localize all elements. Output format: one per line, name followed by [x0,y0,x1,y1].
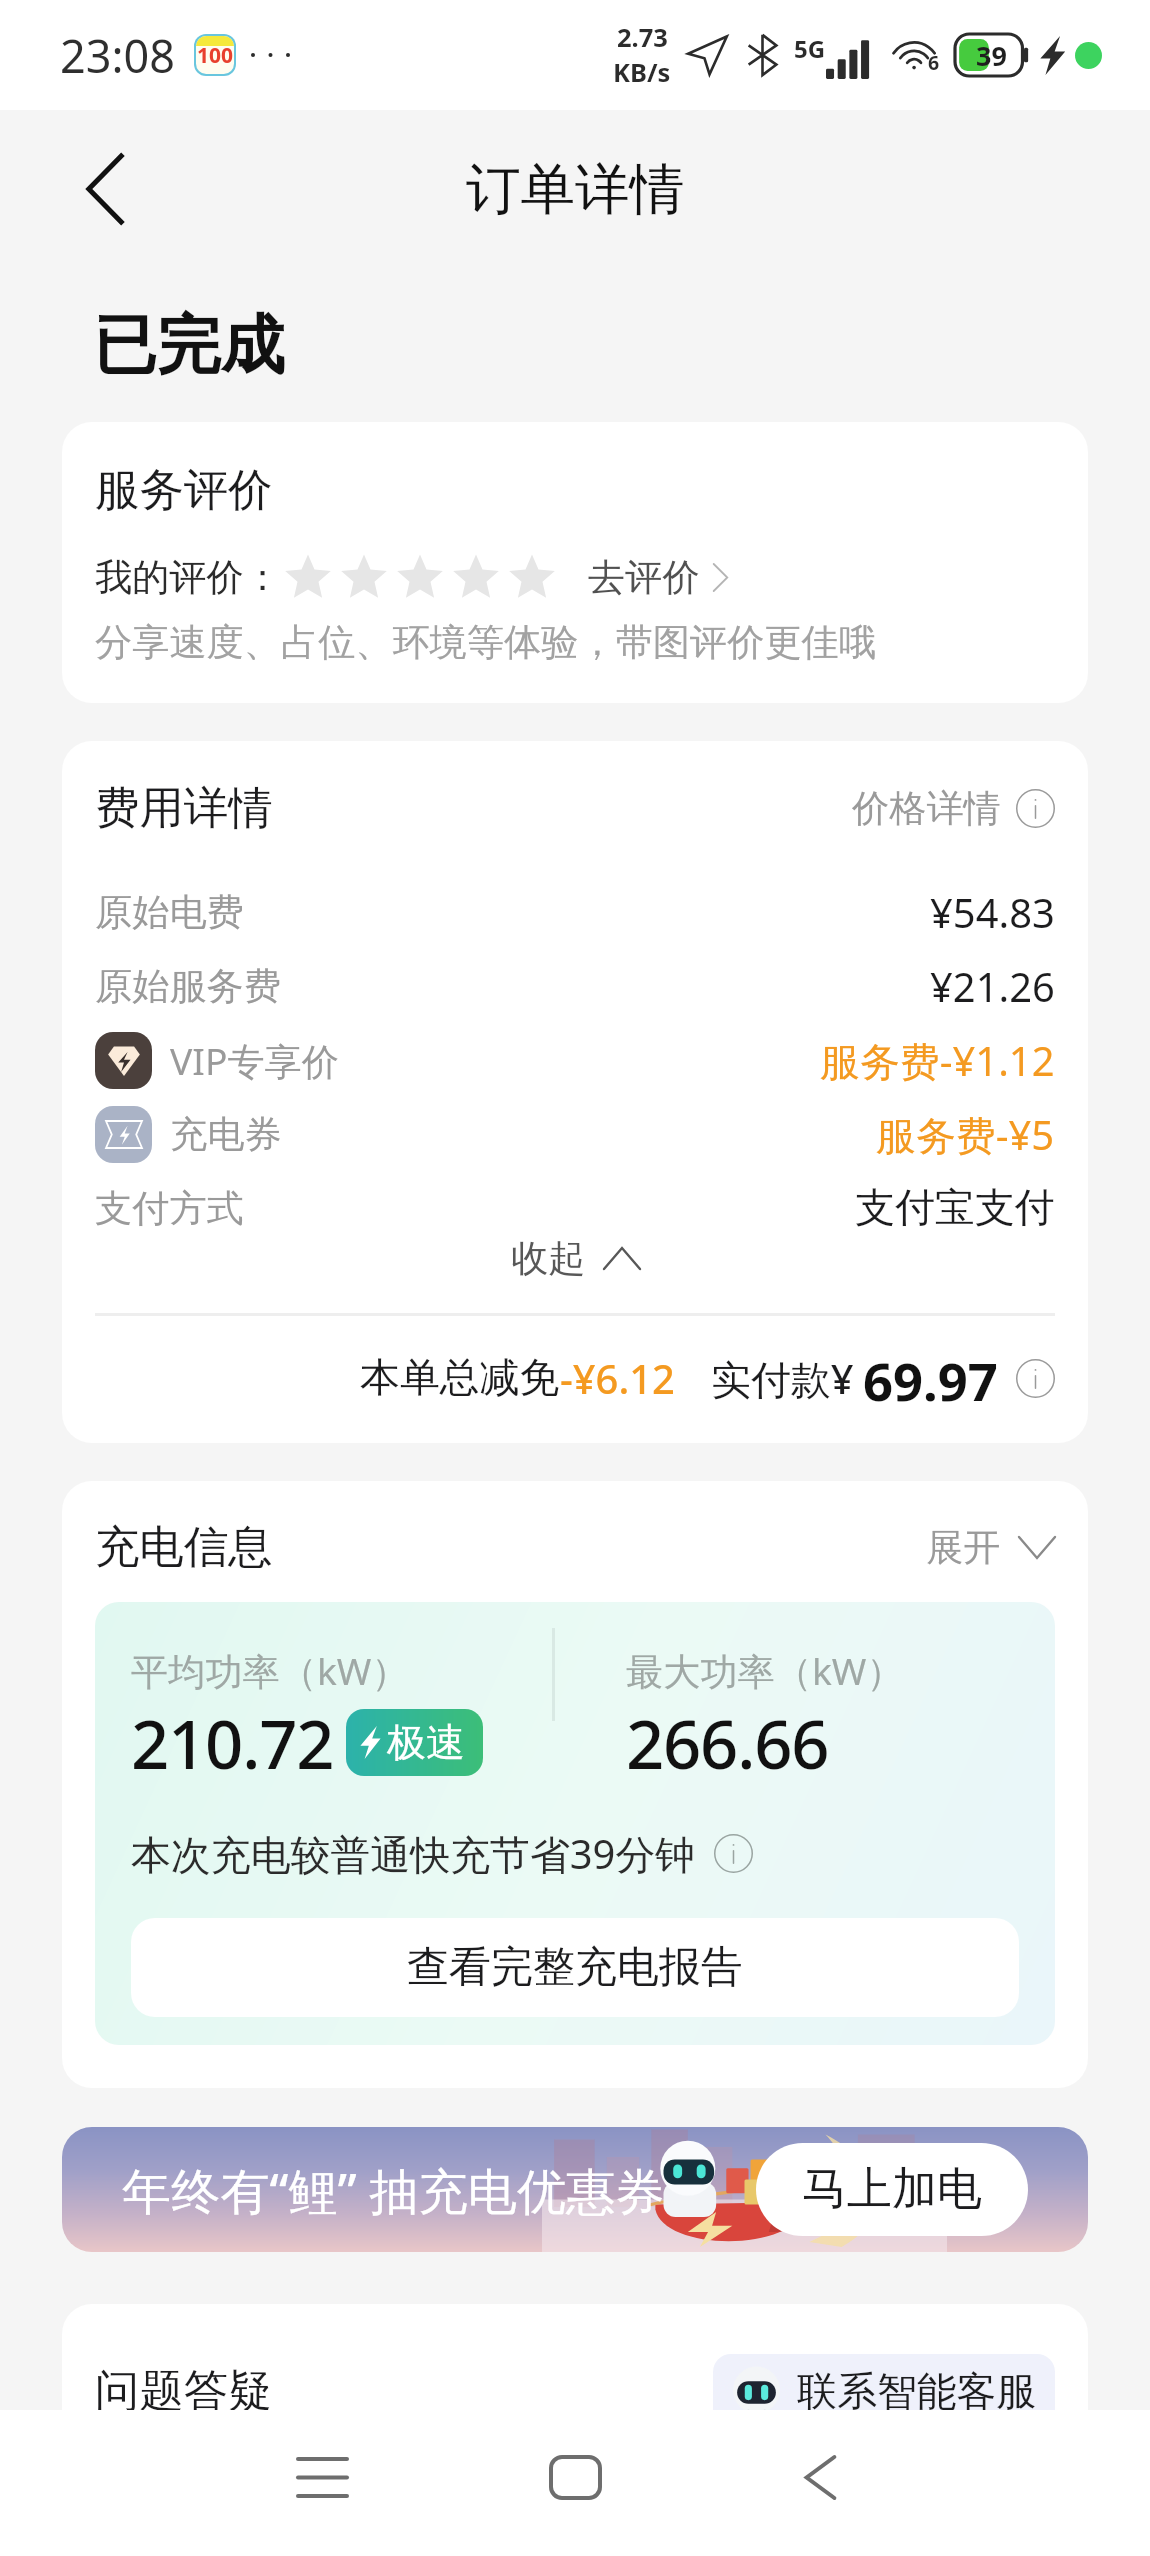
button[interactable]: 展开 [926,1524,1055,1571]
staticText: 价格详情 [852,785,1001,832]
staticText: 本单总减免 [360,1353,560,1403]
staticText: 69.97 [863,1345,998,1411]
staticText: 查看完整充电报告 [407,1941,743,1994]
button[interactable]: Back [745,2404,895,2550]
staticText: 原始电费 [95,889,244,936]
button[interactable]: Home [500,2404,650,2550]
staticText: 已完成 [93,305,285,385]
staticText: 最大功率（kW） [626,1645,904,1696]
staticText: 服务评价 [95,462,273,518]
staticText: 联系智能客服 [797,2367,1037,2417]
button[interactable]: 马上加电 [756,2143,1028,2236]
staticText: 210.72 [131,1697,334,1788]
staticText: 收起 [511,1235,586,1282]
staticText: 5G [794,32,826,65]
button[interactable]: 年终有“鲤” 抽充电优惠券 [62,2127,1088,2252]
button[interactable]: 查看完整充电报告 [131,1918,1019,2017]
staticText: 我的评价： [95,554,281,601]
staticText: 100 [197,41,234,70]
staticText: 23:08 [60,25,176,86]
staticText: 2.73 [617,20,668,55]
staticText: 本次充电较普通快充节省39分钟 [131,1826,696,1880]
staticText: KB/s [613,55,671,90]
staticText: 马上加电 [802,2161,982,2218]
staticText: 问题答疑 [95,2363,273,2419]
staticText: VIP专享价 [170,1035,339,1086]
staticText: 订单详情 [466,155,685,224]
button[interactable]: 去评价 [588,554,729,601]
staticText: 39 [976,37,1007,74]
staticText: 去评价 [588,554,700,601]
button[interactable]: 联系智能客服 [713,2354,1055,2429]
staticText: 实付款¥ [711,1351,854,1405]
staticText: ¥54.83 [930,885,1055,939]
button[interactable]: 价格详情 [852,785,1055,832]
staticText: 展开 [926,1524,1001,1571]
staticText: 6 [928,49,940,76]
staticText: 266.66 [626,1697,829,1788]
button[interactable]: 收起 [95,1225,1055,1291]
staticText: 分享速度、占位、环境等体验，带图评价更佳哦 [95,619,876,666]
staticText: 平均功率（kW） [131,1645,409,1696]
button[interactable]: Back [39,123,171,255]
button[interactable]: Rate this charge session [284,553,564,601]
staticText: ¥21.26 [930,959,1055,1013]
staticText: 支付宝支付 [855,1183,1055,1233]
staticText: -¥6.12 [560,1351,675,1405]
staticText: 原始服务费 [95,963,281,1010]
staticText: 服务费-¥1.12 [820,1033,1055,1087]
staticText: 充电信息 [95,1519,273,1575]
staticText: 费用详情 [95,780,273,836]
staticText: 充电券 [170,1111,282,1158]
staticText: 年终有“鲤” 抽充电优惠券 [122,2156,665,2223]
staticText: 极速 [387,1718,465,1767]
staticText: 服务费-¥5 [876,1107,1055,1161]
button[interactable]: Recents [247,2404,397,2550]
staticText: 支付方式 [95,1185,244,1232]
